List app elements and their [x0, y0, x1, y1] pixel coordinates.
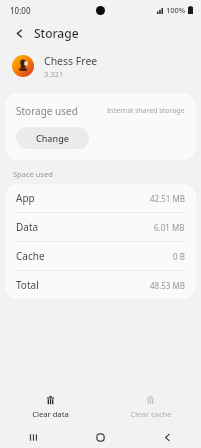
staticText: Cache: [16, 249, 45, 263]
button[interactable]: Back: [9, 23, 29, 43]
staticText: 42.51 MB: [150, 193, 185, 204]
button[interactable]: Clear data: [0, 388, 100, 426]
staticText: Change: [36, 132, 69, 144]
button[interactable]: Clear cache: [100, 388, 201, 426]
staticText: 48.53 MB: [150, 280, 185, 291]
button[interactable]: App: [5, 184, 196, 212]
staticText: Space used: [13, 169, 53, 179]
button[interactable]: Change: [16, 127, 89, 149]
staticText: 100%: [166, 5, 186, 15]
staticText: Storage used: [16, 104, 78, 118]
staticText: Storage: [34, 25, 79, 41]
staticText: App: [16, 191, 35, 205]
button[interactable]: Recents: [0, 426, 67, 448]
staticText: 0 B: [173, 251, 185, 262]
staticText: Clear data: [32, 409, 69, 419]
staticText: Chess Free: [44, 54, 98, 68]
button[interactable]: Back: [134, 426, 201, 448]
staticText: Total: [16, 278, 39, 292]
staticText: Internal shared storage: [107, 106, 185, 116]
button[interactable]: Home: [67, 426, 134, 448]
button[interactable]: Data: [5, 213, 196, 241]
staticText: 6.01 MB: [154, 222, 185, 233]
staticText: 10:00: [10, 5, 31, 16]
button[interactable]: Cache: [5, 242, 196, 270]
staticText: Clear cache: [130, 409, 172, 419]
staticText: Data: [16, 220, 39, 234]
staticText: 3.321: [44, 69, 64, 79]
